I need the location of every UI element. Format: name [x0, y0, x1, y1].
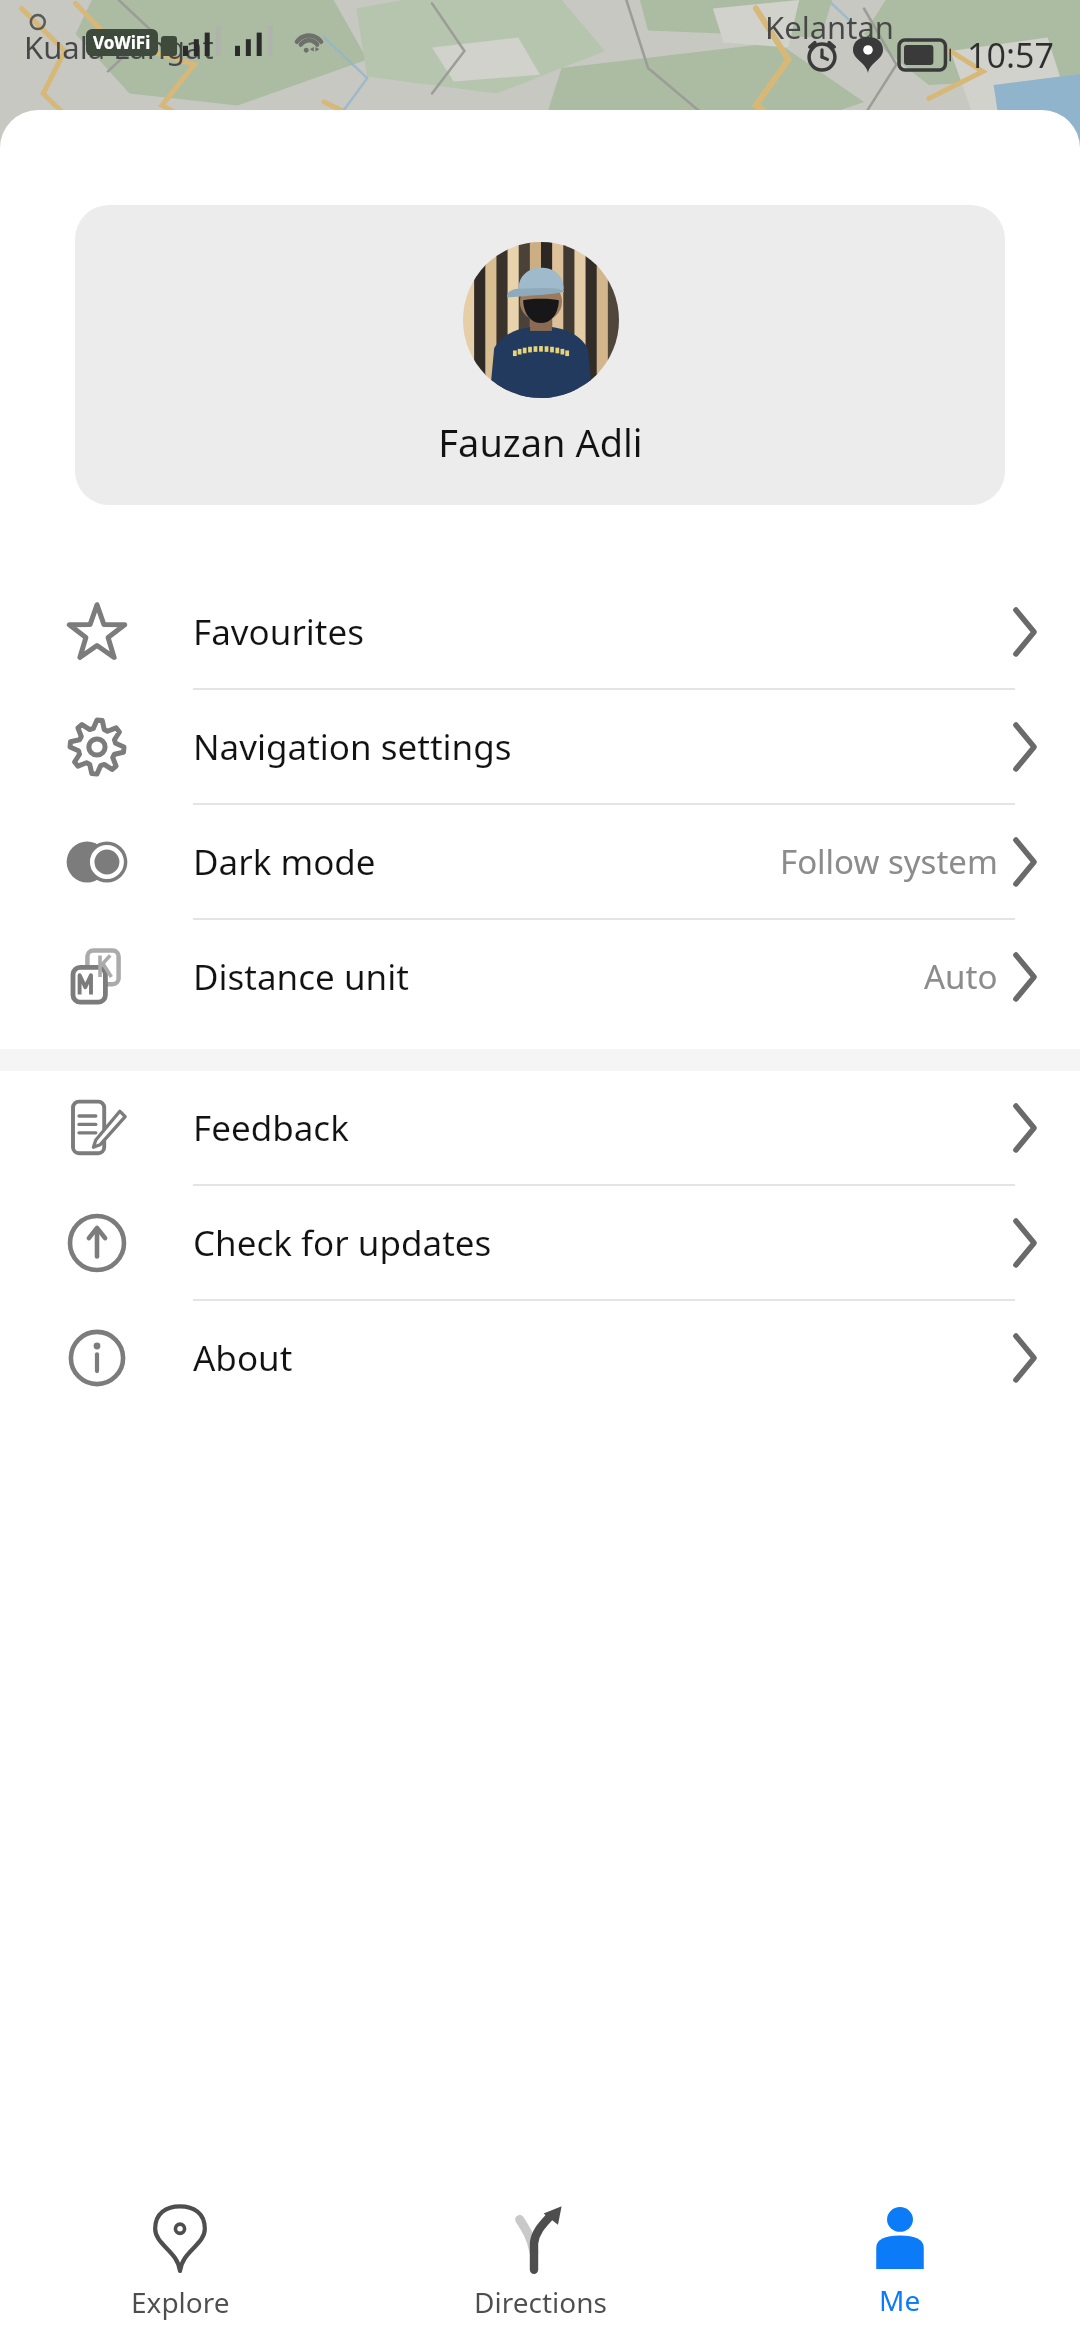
staticText: About [193, 1334, 1012, 1382]
staticText: Check for updates [193, 1219, 1012, 1267]
other: Explore [153, 2205, 207, 2271]
staticText: Feedback [193, 1104, 1012, 1152]
staticText: Explore [131, 2283, 230, 2321]
staticText: 10:57 [967, 32, 1054, 78]
button[interactable]: Navigation settings [0, 690, 1080, 805]
button[interactable]: Explore [0, 2180, 360, 2340]
button[interactable]: Favourites [0, 575, 1080, 690]
staticText: Favourites [193, 608, 1012, 656]
button[interactable]: Dark mode [0, 805, 1080, 920]
other: Directions [510, 2205, 570, 2271]
other: Me [873, 2207, 927, 2269]
button[interactable]: Fauzan Adli [75, 205, 1005, 505]
button[interactable]: Feedback [0, 1071, 1080, 1186]
staticText: Kuala Langat [24, 26, 214, 68]
staticText: Directions [474, 2283, 607, 2321]
button[interactable]: Me [720, 2180, 1080, 2340]
button[interactable]: Check for updates [0, 1186, 1080, 1301]
button[interactable]: Directions [360, 2180, 720, 2340]
staticText: Dark mode [193, 838, 780, 886]
staticText: VoWiFi [93, 31, 151, 54]
button[interactable]: Distance unit [0, 920, 1080, 1033]
staticText: Distance unit [193, 953, 924, 1001]
staticText: Kelantan [765, 6, 894, 48]
staticText: Fauzan Adli [438, 416, 643, 468]
staticText: Auto [924, 954, 998, 999]
button[interactable]: About [0, 1301, 1080, 1414]
staticText: Me [879, 2281, 921, 2319]
staticText: Follow system [780, 839, 998, 884]
staticText: Navigation settings [193, 723, 1012, 771]
